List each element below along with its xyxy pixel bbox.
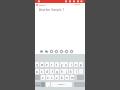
staticText: i xyxy=(71,63,72,67)
button[interactable]: k xyxy=(69,69,73,74)
staticText: f xyxy=(52,70,53,74)
staticText: b xyxy=(61,76,63,80)
button[interactable]: d xyxy=(45,69,49,74)
button[interactable]: e xyxy=(45,62,49,67)
button[interactable]: SEND xyxy=(74,3,81,6)
button[interactable]: l xyxy=(74,69,78,74)
button[interactable]: Text size xyxy=(44,49,48,53)
button[interactable]: , xyxy=(46,82,50,87)
button[interactable]: Emoji xyxy=(41,82,45,87)
button[interactable]: Image xyxy=(64,49,68,53)
button[interactable]: t xyxy=(55,62,59,67)
staticText: r xyxy=(51,63,53,67)
button[interactable]: Navigate up xyxy=(35,3,39,6)
button[interactable]: m xyxy=(70,75,74,80)
staticText: k xyxy=(70,70,72,74)
button[interactable]: j xyxy=(64,69,68,74)
button[interactable]: v xyxy=(55,75,59,80)
button[interactable]: y xyxy=(60,62,64,67)
button[interactable]: q xyxy=(35,62,39,67)
button[interactable]: Attach file xyxy=(39,49,43,53)
staticText: y xyxy=(61,63,63,67)
staticText: q xyxy=(36,63,38,67)
staticText: l xyxy=(76,70,77,74)
staticText: ?123 xyxy=(36,84,40,86)
button[interactable]: w xyxy=(40,62,44,67)
staticText: h xyxy=(61,70,63,74)
button[interactable]: h xyxy=(60,69,64,74)
button[interactable]: Another Sample 1 xyxy=(39,8,65,12)
staticText: c xyxy=(51,76,53,80)
button[interactable]: p xyxy=(79,62,83,67)
button[interactable]: More xyxy=(69,49,73,53)
staticText: e xyxy=(46,63,48,67)
button[interactable]: i xyxy=(69,62,73,67)
button[interactable]: ; xyxy=(79,69,83,74)
staticText: a xyxy=(36,70,38,74)
staticText: , xyxy=(48,83,49,87)
staticText: ; xyxy=(81,70,82,74)
button[interactable]: g xyxy=(55,69,59,74)
staticText: English xyxy=(58,83,65,86)
button[interactable]: z xyxy=(41,75,45,80)
staticText: t xyxy=(56,63,58,67)
button[interactable]: r xyxy=(50,62,54,67)
staticText: n xyxy=(66,76,68,80)
staticText: Inbox xyxy=(39,3,46,6)
button[interactable]: Bold xyxy=(49,49,53,53)
button[interactable]: n xyxy=(65,75,69,80)
staticText: w xyxy=(41,63,44,67)
button[interactable]: Numbers xyxy=(35,82,41,87)
staticText: o xyxy=(75,63,77,67)
button[interactable]: u xyxy=(64,62,68,67)
button[interactable]: b xyxy=(60,75,64,80)
staticText: g xyxy=(56,70,58,74)
staticText: j xyxy=(66,70,67,74)
button[interactable]: Space xyxy=(51,82,72,87)
staticText: z xyxy=(42,76,44,80)
button[interactable]: o xyxy=(74,62,78,67)
button[interactable]: c xyxy=(50,75,54,80)
staticText: p xyxy=(80,63,82,67)
staticText: Another Sample 1 xyxy=(39,8,65,12)
button[interactable]: x xyxy=(46,75,50,80)
staticText: m xyxy=(71,76,74,80)
staticText: s xyxy=(41,70,43,74)
staticText: u xyxy=(65,63,67,67)
button[interactable]: s xyxy=(40,69,44,74)
staticText: v xyxy=(56,76,58,80)
staticText: x xyxy=(47,76,49,80)
staticText: d xyxy=(46,70,48,74)
staticText: SEND xyxy=(74,3,81,6)
button[interactable]: a xyxy=(35,69,39,74)
button[interactable]: Italic xyxy=(54,49,58,53)
button[interactable]: Link xyxy=(59,49,63,53)
button[interactable]: f xyxy=(50,69,54,74)
button[interactable]: Inbox xyxy=(39,3,46,6)
